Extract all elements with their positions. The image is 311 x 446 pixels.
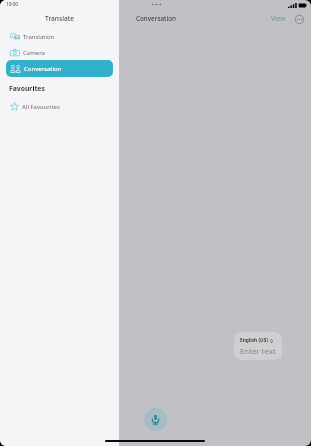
staticText: Translation (23, 33, 55, 41)
staticText: Conversation (136, 14, 176, 23)
staticText: View (271, 14, 286, 23)
button[interactable]: Conversation (6, 60, 113, 77)
staticText: All Favourites (22, 103, 60, 111)
staticText: Camera (23, 49, 45, 57)
button[interactable]: Microphone (144, 408, 167, 431)
staticText: 10:00 (6, 1, 18, 7)
button[interactable]: Translation (6, 28, 113, 45)
button[interactable]: View (269, 11, 288, 26)
button[interactable] (234, 332, 282, 360)
staticText: Translate (45, 14, 75, 23)
staticText: Conversation (24, 65, 62, 73)
button[interactable]: Camera (6, 44, 113, 61)
button[interactable]: All Favourites (6, 98, 113, 115)
staticText: Favourites (9, 84, 45, 93)
staticText: English (US) (240, 337, 268, 344)
button[interactable]: More options (294, 14, 305, 25)
staticText: Enter text (240, 346, 276, 357)
